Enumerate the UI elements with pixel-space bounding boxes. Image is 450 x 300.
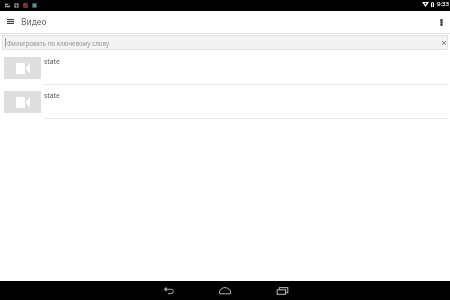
staticText: state <box>44 91 60 100</box>
button[interactable]: state <box>0 85 450 119</box>
staticText: 9:33 <box>437 0 449 8</box>
button[interactable]: Back <box>155 281 181 300</box>
button[interactable]: Home <box>212 281 238 300</box>
staticText: Видео <box>21 16 47 27</box>
button[interactable]: Recent apps <box>269 281 295 300</box>
button[interactable]: Фильтровать по ключевому слову <box>2 35 448 50</box>
button[interactable]: state <box>0 51 450 85</box>
button[interactable]: Clear filter <box>439 35 448 50</box>
button[interactable]: Open navigation drawer <box>0 11 20 33</box>
staticText: state <box>44 57 60 66</box>
button[interactable]: More options <box>433 11 449 33</box>
staticText: Фильтровать по ключевому слову <box>7 39 110 47</box>
